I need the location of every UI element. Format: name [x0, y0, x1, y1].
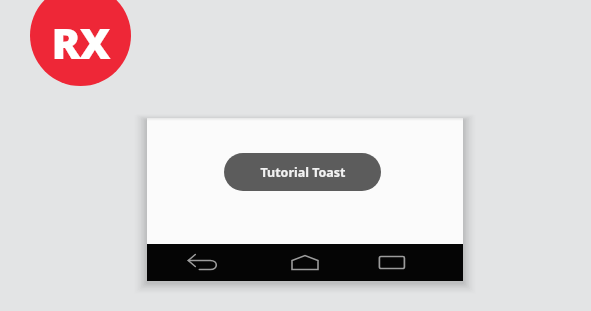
button[interactable]: Home — [281, 246, 329, 279]
staticText: Tutorial Toast — [260, 164, 346, 181]
staticText: RX — [51, 13, 110, 72]
button[interactable]: Tutorial Toast — [224, 153, 381, 191]
button[interactable]: Back — [178, 246, 226, 279]
button[interactable]: Recent apps — [368, 246, 416, 279]
button[interactable]: RX logo — [30, 0, 131, 86]
